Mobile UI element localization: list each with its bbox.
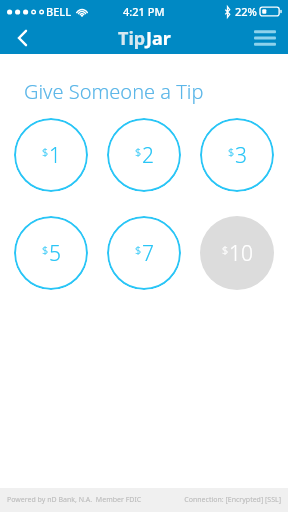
staticText: Give Someone a Tip <box>24 78 204 105</box>
staticText: Tip <box>118 26 146 51</box>
staticText: Connection: [Encrypted] [SSL] <box>184 495 281 505</box>
staticText: Powered by nD Bank, N.A. Member FDIC <box>7 495 142 505</box>
staticText: 1 <box>49 141 61 170</box>
staticText: 5 <box>49 239 61 268</box>
staticText: 3 <box>235 141 247 170</box>
staticText: 7 <box>142 239 154 268</box>
staticText: $ <box>222 242 229 257</box>
staticText: $ <box>135 242 142 257</box>
button[interactable]: $ <box>14 118 88 192</box>
staticText: 10 <box>229 239 253 268</box>
staticText: BELL <box>46 4 72 19</box>
staticText: $ <box>135 144 142 159</box>
staticText: Jar <box>146 26 171 51</box>
staticText: 22% <box>235 4 257 19</box>
button[interactable]: $ <box>107 118 181 192</box>
staticText: $ <box>42 242 49 257</box>
staticText: 2 <box>142 141 154 170</box>
button[interactable]: Back <box>0 22 44 54</box>
staticText: $ <box>228 144 235 159</box>
button[interactable]: Menu <box>242 22 288 54</box>
button[interactable]: $ <box>200 118 274 192</box>
staticText: $ <box>42 144 49 159</box>
button[interactable]: $ <box>14 216 88 290</box>
button[interactable]: $ <box>200 216 274 290</box>
button[interactable]: $ <box>107 216 181 290</box>
staticText: 4:21 PM <box>123 4 165 19</box>
